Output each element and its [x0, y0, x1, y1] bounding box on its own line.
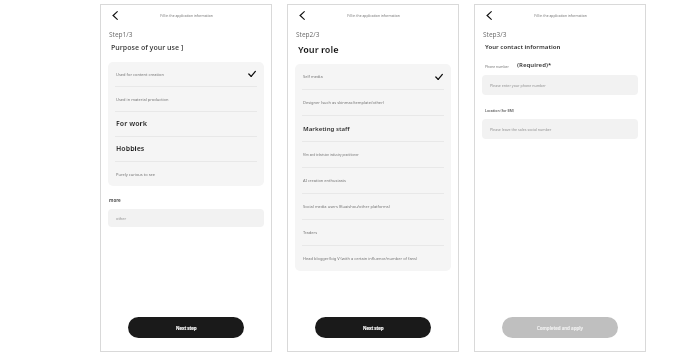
button[interactable]: Please leave the sales social number	[482, 119, 638, 139]
button[interactable]: Back	[294, 7, 310, 23]
button[interactable]: Self media	[295, 64, 451, 89]
button[interactable]: For work	[108, 112, 264, 136]
button[interactable]: Marketing staff	[295, 116, 451, 141]
staticText: Self media	[303, 74, 435, 79]
staticText: Step1/3	[109, 30, 133, 39]
button[interactable]: Purely curious to see	[108, 162, 264, 186]
button[interactable]: Completed and apply	[502, 317, 618, 338]
button[interactable]: Social media users (Kuaishou/other platf…	[295, 194, 451, 219]
staticText: Hobbies	[116, 144, 256, 154]
staticText: Phone number	[485, 64, 509, 69]
staticText: Purpose of your use ]	[111, 43, 184, 53]
staticText: Next step	[176, 325, 197, 331]
button[interactable]: Next step	[315, 317, 431, 338]
button[interactable]: Designer (such as skinmac/template/other…	[295, 90, 451, 115]
staticText: Completed and apply	[537, 325, 583, 331]
button[interactable]: Back	[107, 7, 123, 23]
staticText: Designer (such as skinmac/template/other…	[303, 100, 443, 105]
staticText: Fill in the application information	[160, 13, 213, 18]
staticText: Purely curious to see	[116, 172, 256, 177]
staticText: Film and television industry practitione…	[303, 153, 443, 157]
staticText: Fill in the application information	[347, 13, 400, 18]
staticText: Your role	[298, 43, 339, 55]
staticText: AI creation enthusiasts	[303, 178, 443, 183]
button[interactable]: Traders	[295, 220, 451, 245]
staticText: Please enter your phone number	[490, 83, 546, 88]
button[interactable]: Head blogger/big V (with a certain influ…	[295, 246, 451, 271]
staticText: Location (for BM)	[485, 108, 515, 113]
button[interactable]: other	[108, 209, 264, 227]
staticText: Marketing staff	[303, 125, 443, 133]
staticText: Step2/3	[296, 30, 320, 39]
staticText: Used for content creation	[116, 72, 248, 77]
staticText: Fill in the application information	[534, 13, 587, 18]
staticText: more	[109, 197, 121, 203]
staticText: Please leave the sales social number	[490, 127, 552, 132]
staticText: Next step	[363, 325, 384, 331]
button[interactable]: Film and television industry practitione…	[295, 142, 451, 167]
button[interactable]: Hobbies	[108, 137, 264, 161]
button[interactable]: Used for content creation	[108, 62, 264, 86]
staticText: Traders	[303, 230, 443, 235]
button[interactable]: Please enter your phone number	[482, 75, 638, 95]
staticText: Your contact information	[485, 43, 561, 51]
button[interactable]: Back	[481, 7, 497, 23]
button[interactable]: AI creation enthusiasts	[295, 168, 451, 193]
staticText: For work	[116, 119, 256, 129]
staticText: Social media users (Kuaishou/other platf…	[303, 204, 443, 209]
button[interactable]: Used in material production	[108, 87, 264, 111]
button[interactable]: Next step	[128, 317, 244, 338]
staticText: Head blogger/big V (with a certain influ…	[303, 256, 443, 261]
staticText: Step3/3	[483, 30, 507, 39]
staticText: other	[116, 216, 127, 221]
staticText: (Required)*	[517, 61, 552, 69]
staticText: Used in material production	[116, 97, 256, 102]
